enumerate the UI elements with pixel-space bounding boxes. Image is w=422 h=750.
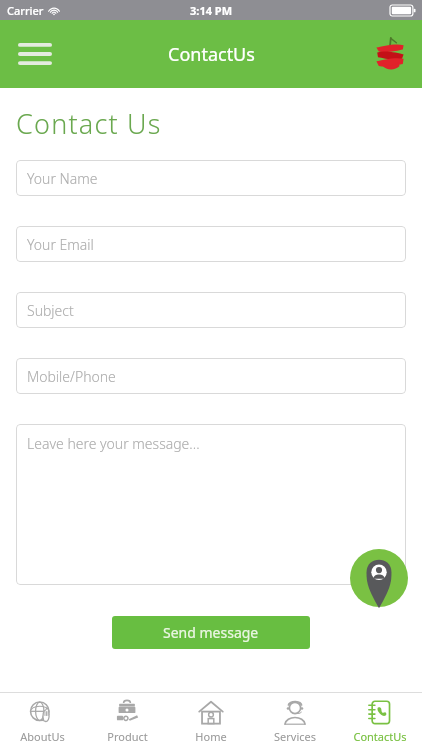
staticText: Carrier: [7, 3, 44, 18]
button[interactable]: Services: [253, 693, 337, 750]
button[interactable]: Menu: [12, 31, 58, 77]
button[interactable]: Send message: [112, 616, 310, 649]
staticText: Your Email: [27, 235, 94, 254]
staticText: AboutUs: [20, 729, 65, 744]
staticText: ContactUs: [168, 42, 255, 67]
staticText: Your Name: [27, 169, 98, 188]
button[interactable]: Home: [169, 693, 253, 750]
button[interactable]: ContactUs: [338, 693, 422, 750]
staticText: Send message: [163, 623, 259, 642]
staticText: Product: [107, 729, 148, 744]
button[interactable]: Your Name: [16, 160, 406, 196]
button[interactable]: Logo: [367, 31, 413, 77]
staticText: ContactUs: [353, 729, 407, 744]
staticText: Contact Us: [16, 105, 162, 142]
button[interactable]: Find us on map: [350, 549, 408, 607]
staticText: Subject: [27, 301, 74, 320]
button[interactable]: Subject: [16, 292, 406, 328]
button[interactable]: Product: [85, 693, 169, 750]
staticText: 3:14 PM: [190, 3, 233, 18]
button[interactable]: AboutUs: [0, 693, 84, 750]
button[interactable]: Your Email: [16, 226, 406, 262]
staticText: Leave here your message...: [27, 434, 200, 453]
button[interactable]: Leave here your message...: [16, 424, 406, 585]
staticText: Mobile/Phone: [27, 367, 116, 386]
staticText: Home: [195, 729, 227, 744]
staticText: Services: [274, 729, 316, 744]
button[interactable]: Mobile/Phone: [16, 358, 406, 394]
